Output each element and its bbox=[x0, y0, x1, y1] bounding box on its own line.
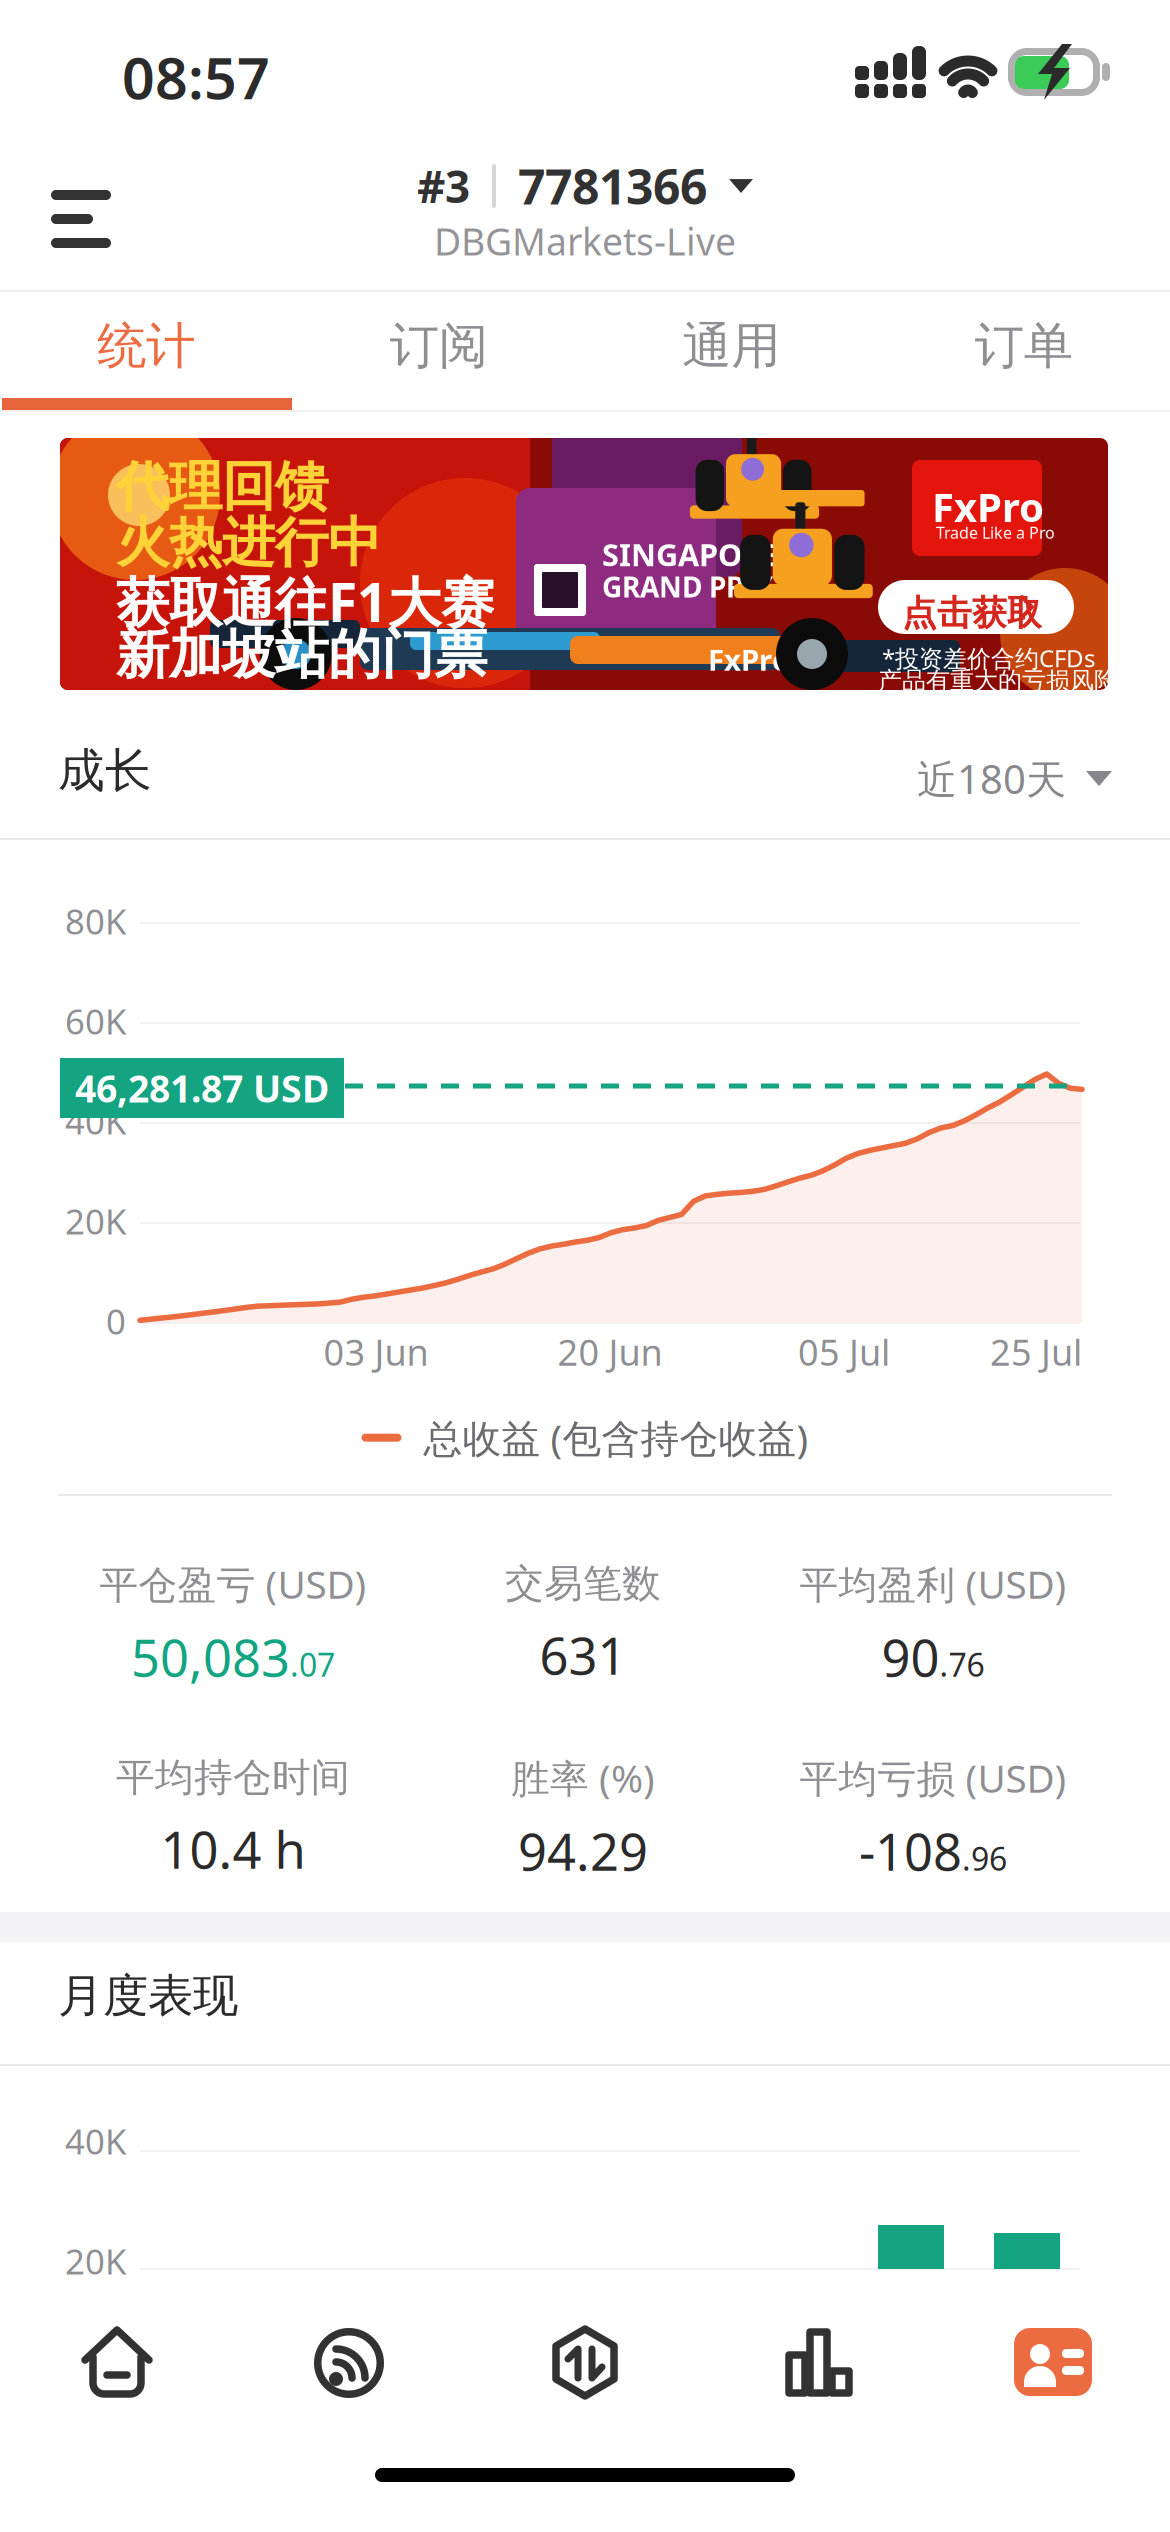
staticText: 平均亏损 (USD) bbox=[799, 1752, 1066, 1803]
staticText: 成长 bbox=[58, 742, 152, 799]
staticText: Trade Like a Pro bbox=[936, 522, 1055, 543]
staticText: 40K bbox=[65, 1098, 126, 1144]
staticText: 订单 bbox=[975, 316, 1073, 376]
staticText: 94.29 bbox=[518, 1817, 648, 1885]
button[interactable]: SINGAPORE bbox=[60, 438, 1108, 690]
staticText: -108 bbox=[859, 1817, 962, 1885]
staticText: 40K bbox=[65, 2118, 126, 2164]
staticText: 平均盈利 (USD) bbox=[799, 1558, 1066, 1609]
button[interactable]: 订单 bbox=[877, 292, 1170, 400]
staticText: 代理回馈 bbox=[116, 454, 328, 519]
button[interactable]: Trade bbox=[551, 2325, 619, 2400]
staticText: FxPro bbox=[932, 480, 1044, 533]
staticText: 03 Jun bbox=[323, 1328, 428, 1376]
staticText: FxPro bbox=[708, 640, 790, 679]
staticText: 平均持仓时间 bbox=[116, 1754, 350, 1801]
staticText: #3 bbox=[417, 157, 470, 215]
staticText: 点击获取 bbox=[902, 592, 1042, 635]
staticText: .76 bbox=[939, 1643, 984, 1685]
staticText: 交易笔数 bbox=[505, 1560, 661, 1607]
staticText: 胜率 (%) bbox=[511, 1752, 655, 1803]
staticText: 631 bbox=[539, 1621, 626, 1689]
button[interactable]: Menu bbox=[21, 162, 141, 276]
staticText: GRAND PRIX bbox=[602, 568, 774, 605]
staticText: 50,083 bbox=[131, 1623, 290, 1691]
staticText: 平仓盈亏 (USD) bbox=[99, 1558, 366, 1609]
staticText: 统计 bbox=[97, 316, 195, 376]
staticText: 25 Jul bbox=[990, 1328, 1082, 1376]
staticText: 获取通往F1大赛 bbox=[116, 566, 494, 637]
button[interactable]: Statistics bbox=[784, 2326, 854, 2398]
staticText: 10.4 h bbox=[160, 1815, 305, 1883]
button[interactable]: 统计 bbox=[0, 292, 292, 400]
staticText: *投资差价合约CFDs bbox=[882, 642, 1095, 674]
button[interactable]: Account bbox=[1014, 2328, 1092, 2396]
staticText: SINGAPORE bbox=[602, 534, 779, 575]
staticText: 20 Jun bbox=[557, 1328, 662, 1376]
button[interactable]: Signals bbox=[314, 2328, 384, 2398]
staticText: 7781366 bbox=[518, 154, 707, 218]
button[interactable]: 近180天 bbox=[917, 752, 1112, 805]
staticText: 80K bbox=[65, 898, 126, 944]
staticText: 近180天 bbox=[917, 752, 1066, 805]
staticText: 0 bbox=[106, 1298, 126, 1344]
staticText: .96 bbox=[962, 1837, 1007, 1879]
staticText: 火热进行中 bbox=[116, 510, 381, 575]
staticText: 订阅 bbox=[390, 316, 488, 376]
staticText: 05 Jul bbox=[798, 1328, 890, 1376]
staticText: 月度表现 bbox=[58, 1968, 238, 2024]
staticText: 60K bbox=[65, 998, 126, 1044]
button[interactable]: 通用 bbox=[585, 292, 877, 400]
staticText: 08:57 bbox=[122, 39, 270, 115]
staticText: 总收益 (包含持仓收益) bbox=[423, 1412, 808, 1463]
staticText: 新加坡站的门票 bbox=[116, 622, 487, 687]
staticText: 产品有重大的亏损风险 bbox=[878, 666, 1118, 695]
staticText: 20K bbox=[65, 2238, 126, 2284]
staticText: 20K bbox=[65, 1198, 126, 1244]
staticText: 通用 bbox=[682, 316, 780, 376]
staticText: DBGMarkets-Live bbox=[434, 216, 736, 266]
staticText: 46,281.87 USD bbox=[75, 1063, 329, 1113]
staticText: 90 bbox=[881, 1623, 939, 1691]
staticText: .07 bbox=[290, 1643, 335, 1685]
button[interactable]: Home bbox=[82, 2326, 152, 2398]
button[interactable]: 订阅 bbox=[292, 292, 585, 400]
